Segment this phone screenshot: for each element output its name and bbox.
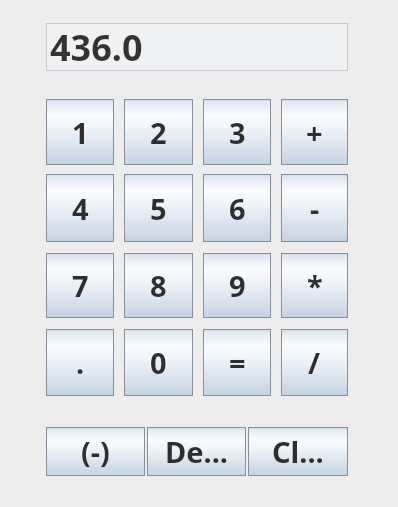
button[interactable]: - bbox=[281, 174, 348, 242]
staticText: = bbox=[229, 343, 246, 382]
button[interactable]: 436.0 bbox=[46, 23, 348, 71]
button[interactable]: * bbox=[281, 253, 348, 318]
button[interactable]: 6 bbox=[203, 174, 271, 242]
button[interactable]: 8 bbox=[124, 253, 193, 318]
button[interactable]: 0 bbox=[124, 329, 193, 396]
button[interactable]: + bbox=[281, 99, 348, 165]
staticText: * bbox=[307, 266, 323, 305]
button[interactable]: 7 bbox=[46, 253, 114, 318]
staticText: 4 bbox=[72, 189, 89, 228]
button[interactable]: 5 bbox=[124, 174, 193, 242]
staticText: 9 bbox=[229, 266, 246, 305]
staticText: 5 bbox=[150, 189, 167, 228]
staticText: . bbox=[76, 343, 85, 382]
button[interactable]: 4 bbox=[46, 174, 114, 242]
staticText: 1 bbox=[72, 113, 89, 152]
staticText: 6 bbox=[229, 189, 246, 228]
button[interactable]: 9 bbox=[203, 253, 271, 318]
button[interactable]: (-) bbox=[46, 427, 145, 476]
staticText: / bbox=[308, 343, 321, 382]
button[interactable]: . bbox=[46, 329, 114, 396]
button[interactable]: 3 bbox=[203, 99, 271, 165]
staticText: 2 bbox=[150, 113, 167, 152]
button[interactable]: = bbox=[203, 329, 271, 396]
button[interactable]: Cl... bbox=[248, 427, 348, 476]
staticText: Cl... bbox=[272, 432, 324, 471]
button[interactable]: De... bbox=[147, 427, 246, 476]
staticText: 3 bbox=[229, 113, 246, 152]
staticText: 0 bbox=[150, 343, 167, 382]
button[interactable]: 2 bbox=[124, 99, 193, 165]
button[interactable]: / bbox=[281, 329, 348, 396]
staticText: 8 bbox=[150, 266, 167, 305]
staticText: + bbox=[306, 113, 323, 152]
staticText: De... bbox=[165, 432, 228, 471]
button[interactable]: 1 bbox=[46, 99, 114, 165]
staticText: - bbox=[310, 189, 320, 228]
staticText: 7 bbox=[72, 266, 89, 305]
staticText: (-) bbox=[81, 432, 110, 471]
staticText: 436.0 bbox=[50, 23, 143, 71]
